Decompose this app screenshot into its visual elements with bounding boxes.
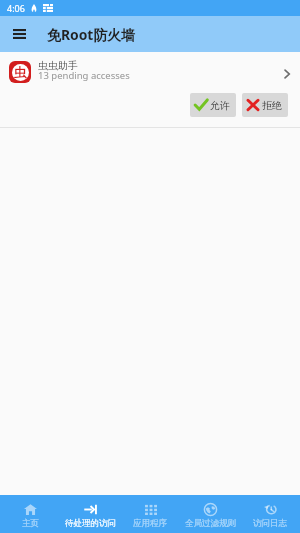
button[interactable]: 全局过滤规则 <box>180 495 240 533</box>
button[interactable]: Open navigation menu <box>0 16 38 52</box>
button[interactable]: 主页 <box>0 495 60 533</box>
staticText: 主页 <box>22 518 39 529</box>
staticText: 虫虫助手 <box>38 59 78 72</box>
button[interactable]: 虫 <box>0 52 300 128</box>
staticText: 免Root防火墙 <box>47 25 136 44</box>
staticText: 全局过滤规则 <box>185 518 236 529</box>
button[interactable]: 允许 <box>190 93 236 117</box>
button[interactable]: 应用程序 <box>120 495 180 533</box>
staticText: 13 pending accesses <box>38 69 130 82</box>
staticText: 虫 <box>14 65 27 81</box>
button[interactable]: 访问日志 <box>240 495 300 533</box>
staticText: 访问日志 <box>253 518 287 529</box>
staticText: 待处理的访问 <box>65 518 116 529</box>
staticText: 应用程序 <box>133 518 167 529</box>
staticText: 拒绝 <box>262 99 282 112</box>
staticText: 允许 <box>210 99 230 112</box>
staticText: 4:06 <box>7 2 25 14</box>
button[interactable]: 拒绝 <box>242 93 288 117</box>
button[interactable]: 待处理的访问 <box>60 495 120 533</box>
